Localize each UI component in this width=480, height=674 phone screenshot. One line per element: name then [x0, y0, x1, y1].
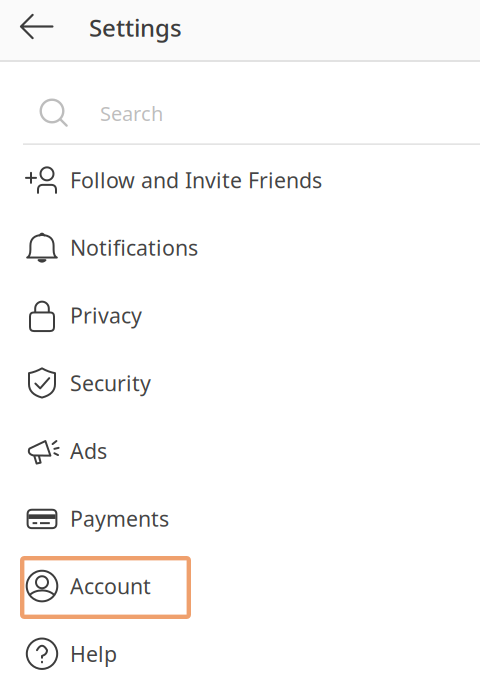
button[interactable]: Help	[0, 620, 480, 674]
button[interactable]: Payments	[0, 484, 480, 552]
staticText: Settings	[89, 12, 182, 43]
staticText: Ads	[70, 436, 107, 465]
button[interactable]: Back	[20, 0, 74, 61]
staticText: Account	[70, 572, 151, 600]
button[interactable]: Account	[0, 552, 480, 620]
staticText: Payments	[70, 504, 169, 532]
button[interactable]: Privacy	[0, 281, 480, 349]
button[interactable]: Ads	[0, 417, 480, 484]
staticText: Privacy	[70, 301, 142, 329]
button[interactable]: Follow and Invite Friends	[0, 146, 480, 214]
button[interactable]: Notifications	[0, 214, 480, 281]
staticText: Follow and Invite Friends	[70, 166, 322, 194]
staticText: Notifications	[70, 233, 198, 262]
staticText: Help	[70, 640, 117, 668]
button[interactable]: Security	[0, 349, 480, 417]
staticText: Search	[100, 100, 163, 127]
button[interactable]: Search	[0, 61, 480, 142]
staticText: Security	[70, 369, 151, 397]
